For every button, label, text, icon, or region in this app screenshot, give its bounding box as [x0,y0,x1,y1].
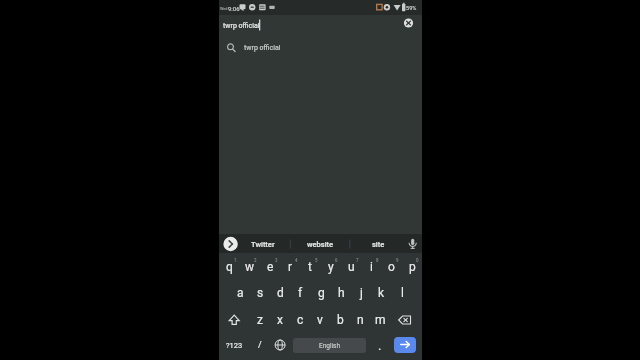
staticText: f [298,286,303,300]
staticText: 5 [315,258,318,263]
button[interactable] [355,234,401,253]
button[interactable]: twrp official [219,38,422,58]
button[interactable]: r [280,255,300,279]
button[interactable]: / [250,333,270,357]
staticText: g [318,286,325,300]
button[interactable]: f [290,281,310,305]
staticText: 3 [275,258,278,263]
staticText: n [357,313,364,327]
staticText: 6 [335,258,338,263]
staticText: y [328,260,334,274]
staticText: . [378,338,382,353]
staticText: website [307,240,334,249]
button[interactable]: English [293,338,366,353]
staticText: b [337,313,344,327]
button[interactable] [401,16,416,31]
staticText: q [226,260,233,274]
staticText: i [370,260,373,274]
staticText: u [348,260,355,274]
staticText: / [258,340,262,351]
staticText: English [319,342,341,350]
staticText: x [277,313,283,327]
button[interactable]: p [402,255,422,279]
button[interactable] [405,235,421,252]
staticText: c [297,313,304,327]
staticText: 59% [406,5,417,12]
staticText: 0 [416,258,419,263]
staticText: twrp official [244,44,281,52]
button[interactable]: o [381,255,401,279]
staticText: 8 [376,258,379,263]
staticText: 2 [254,258,257,263]
button[interactable] [239,234,287,253]
button[interactable]: h [331,281,351,305]
button[interactable]: j [351,281,371,305]
staticText: 4 [295,258,298,263]
staticText: j [360,286,363,300]
staticText: twrp official [223,22,260,30]
staticText: v [317,313,323,327]
button[interactable]: y [321,255,341,279]
button[interactable] [223,236,238,251]
button[interactable]: e [260,255,280,279]
button[interactable]: g [311,281,331,305]
button[interactable] [295,234,343,253]
staticText: d [277,286,284,300]
button[interactable] [394,337,416,353]
staticText: 1 [234,258,237,263]
button[interactable]: ?123 [224,333,244,357]
staticText: e [267,260,274,274]
button[interactable] [370,336,390,356]
button[interactable]: k [371,281,391,305]
button[interactable]: v [310,308,330,332]
button[interactable]: x [270,308,290,332]
staticText: Twitter [251,240,275,249]
button[interactable]: i [361,255,381,279]
staticText: 9 [396,258,399,263]
staticText: z [257,313,263,327]
button[interactable]: a [230,281,250,305]
staticText: site [372,240,385,249]
staticText: 7 [356,258,359,263]
staticText: l [401,286,404,300]
staticText: ?123 [226,341,243,350]
button[interactable] [222,308,247,332]
staticText: w [245,260,255,274]
button[interactable] [393,308,419,332]
button[interactable]: n [350,308,370,332]
button[interactable]: l [392,281,412,305]
staticText: t [308,260,312,274]
staticText: k [378,286,385,300]
button[interactable]: s [250,281,270,305]
button[interactable]: t [300,255,320,279]
button[interactable]: d [270,281,290,305]
staticText: o [388,260,395,274]
button[interactable]: q [219,255,239,279]
button[interactable]: u [341,255,361,279]
button[interactable]: z [250,308,270,332]
button[interactable]: w [240,255,260,279]
button[interactable] [270,334,290,356]
staticText: p [409,260,416,274]
staticText: a [237,286,244,300]
staticText: r [288,260,293,274]
staticText: 9:06 [228,5,240,12]
staticText: m [375,313,386,327]
button[interactable]: c [290,308,310,332]
button[interactable]: b [330,308,350,332]
button[interactable] [219,15,397,36]
button[interactable]: m [370,308,390,332]
staticText: Wed [220,6,228,10]
staticText: s [257,286,264,300]
staticText: h [338,286,345,300]
